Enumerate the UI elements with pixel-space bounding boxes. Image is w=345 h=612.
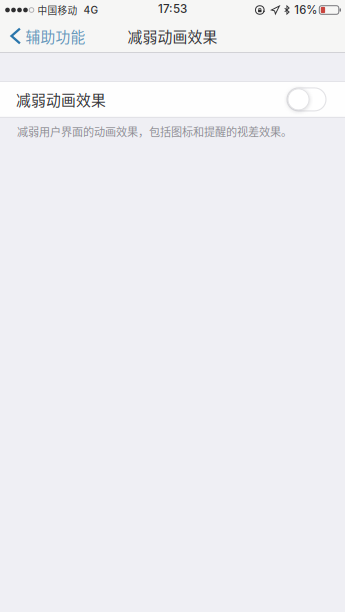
staticText: 减弱动画效果 <box>127 25 217 47</box>
staticText: 16% <box>294 3 317 17</box>
staticText: 4G <box>83 4 98 16</box>
button[interactable]: 辅助功能 <box>0 20 93 52</box>
staticText: 辅助功能 <box>25 25 85 47</box>
staticText: 17:53 <box>158 2 187 16</box>
staticText: 中国移动 <box>37 3 77 17</box>
staticText: 减弱用户界面的动画效果，包括图标和提醒的视差效果。 <box>17 123 292 139</box>
staticText: 减弱动画效果 <box>16 89 106 110</box>
button[interactable]: 减弱动画效果 <box>0 82 345 117</box>
